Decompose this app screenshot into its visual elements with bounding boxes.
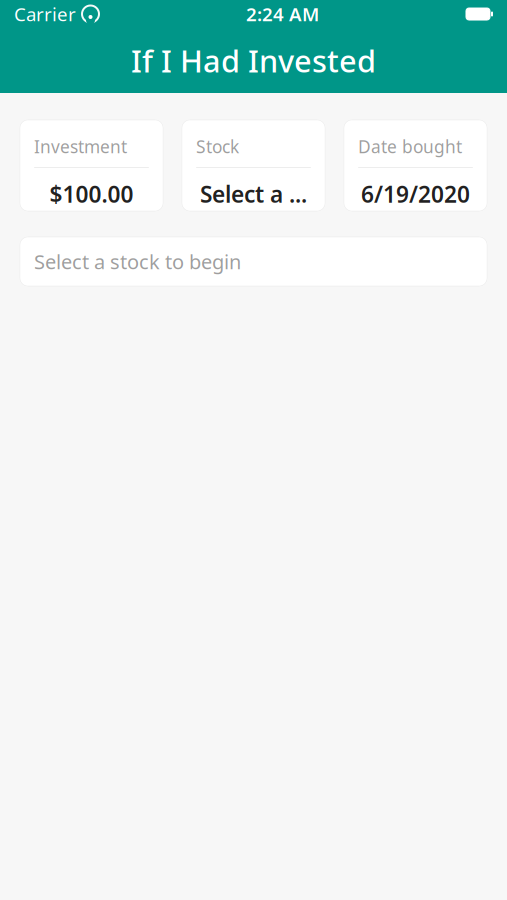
staticText: Select a stock to begin xyxy=(34,248,241,275)
staticText: Investment xyxy=(34,135,127,158)
staticText: 2:24 AM xyxy=(246,2,319,26)
button[interactable]: Stock xyxy=(182,120,325,211)
staticText: Select a ... xyxy=(200,179,307,209)
button[interactable]: Select a stock to begin xyxy=(20,237,487,286)
staticText: 6/19/2020 xyxy=(361,179,470,209)
staticText: $100.00 xyxy=(49,179,133,209)
staticText: Carrier xyxy=(14,2,76,26)
staticText: Stock xyxy=(196,135,239,158)
staticText: If I Had Invested xyxy=(131,40,376,81)
button[interactable]: Investment xyxy=(20,120,163,211)
staticText: Date bought xyxy=(358,135,462,158)
button[interactable]: Date bought xyxy=(344,120,487,211)
